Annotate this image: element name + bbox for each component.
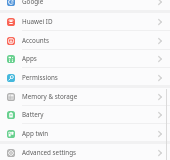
- staticText: Permissions: [22, 73, 58, 82]
- staticText: Battery: [22, 110, 44, 119]
- staticText: Apps: [22, 54, 37, 63]
- button[interactable]: Google: [0, 0, 170, 11]
- staticText: Advanced settings: [22, 148, 77, 157]
- button[interactable]: Advanced settings: [0, 143, 170, 160]
- button[interactable]: Permissions: [0, 68, 170, 87]
- button[interactable]: Apps: [0, 49, 170, 68]
- staticText: Memory & storage: [22, 92, 78, 101]
- button[interactable]: Huawei ID: [0, 12, 170, 31]
- button[interactable]: Battery: [0, 105, 170, 124]
- staticText: Huawei ID: [22, 17, 53, 26]
- staticText: Google: [22, 0, 44, 6]
- button[interactable]: App twin: [0, 124, 170, 143]
- staticText: App twin: [22, 129, 49, 138]
- button[interactable]: Memory & storage: [0, 87, 170, 106]
- button[interactable]: Accounts: [0, 31, 170, 50]
- staticText: Accounts: [22, 36, 49, 45]
